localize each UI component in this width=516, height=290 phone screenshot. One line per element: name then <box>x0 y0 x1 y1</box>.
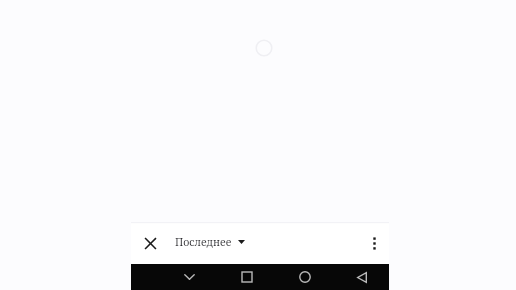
staticText: Последнее <box>175 235 232 249</box>
button[interactable]: Последнее <box>175 235 241 249</box>
button[interactable]: Close <box>139 232 161 254</box>
button[interactable]: Hide <box>180 268 198 286</box>
button[interactable]: Back <box>353 268 371 286</box>
button[interactable]: More options <box>363 232 385 254</box>
button[interactable]: Recents <box>238 268 256 286</box>
button[interactable]: Home <box>296 268 314 286</box>
